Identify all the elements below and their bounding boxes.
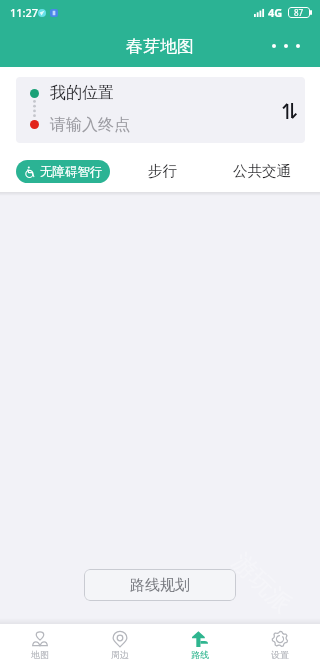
button[interactable]: 地图 <box>0 624 80 666</box>
staticText: 地图 <box>31 649 49 660</box>
button[interactable]: Swap origin and destination <box>275 98 301 124</box>
staticText: 周边 <box>111 649 129 660</box>
staticText: 11:27 <box>10 5 39 20</box>
button[interactable]: 我的位置 <box>16 77 305 109</box>
button[interactable]: 周边 <box>80 624 160 666</box>
staticText: 路线 <box>191 649 209 660</box>
button[interactable]: 无障碍智行 <box>16 160 110 183</box>
staticText: 无障碍智行 <box>40 164 103 180</box>
staticText: 游玩派 <box>226 547 298 619</box>
button[interactable]: 公共交通 <box>227 154 297 188</box>
staticText: 87 <box>294 7 304 18</box>
button[interactable]: 路线规划 <box>84 569 236 601</box>
button[interactable]: 路线 <box>160 624 240 666</box>
staticText: 步行 <box>148 162 177 180</box>
staticText: 我的位置 <box>50 83 114 103</box>
staticText: 春芽地图 <box>126 36 194 57</box>
button[interactable]: 请输入终点 <box>16 109 305 140</box>
staticText: 设置 <box>271 649 289 660</box>
staticText: 4G <box>268 5 283 20</box>
button[interactable]: 设置 <box>240 624 320 666</box>
staticText: 路线规划 <box>130 576 190 595</box>
staticText: 公共交通 <box>233 162 291 180</box>
button[interactable]: 步行 <box>142 154 183 188</box>
staticText: 请输入终点 <box>50 115 130 135</box>
button[interactable]: More options <box>266 36 306 56</box>
